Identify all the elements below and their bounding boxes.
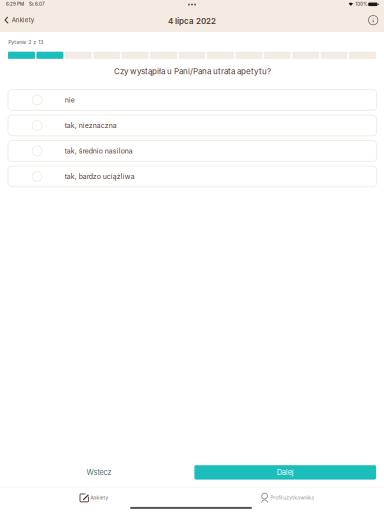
staticText: Pytanie 2 z 13: [8, 39, 43, 45]
staticText: tak, bardzo uciążliwa: [65, 172, 135, 181]
button[interactable]: nie: [8, 89, 377, 110]
staticText: nie: [65, 96, 75, 104]
button[interactable]: Wstecz: [8, 465, 190, 480]
button[interactable]: tak, nieznaczna: [8, 115, 377, 136]
staticText: Ankiety: [90, 495, 108, 501]
staticText: tak, nieznaczna: [65, 121, 117, 130]
staticText: 4 lipca 2022: [168, 16, 216, 26]
staticText: Ankiety: [12, 16, 34, 24]
staticText: 6:29 PM: [6, 1, 24, 7]
staticText: Wstecz: [86, 468, 111, 477]
staticText: Profil użytkownika: [270, 494, 314, 501]
staticText: Śr. 6.07: [29, 1, 45, 7]
button[interactable]: Ankiety: [0, 12, 39, 28]
button[interactable]: Profil użytkownika: [232, 489, 342, 507]
button[interactable]: Dalej: [194, 465, 376, 480]
button[interactable]: Informacje: [366, 13, 381, 28]
staticText: Dalej: [277, 468, 294, 477]
staticText: Czy wystąpiła u Pani/Pana utrata apetytu…: [114, 67, 271, 76]
button[interactable]: tak, bardzo uciążliwa: [8, 166, 377, 187]
button[interactable]: Ankiety: [45, 489, 141, 507]
staticText: tak, średnio nasilona: [65, 147, 133, 155]
button[interactable]: tak, średnio nasilona: [8, 140, 377, 161]
staticText: 100%: [355, 2, 367, 7]
